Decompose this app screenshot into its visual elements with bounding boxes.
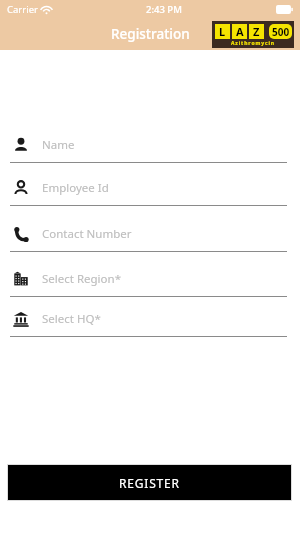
button[interactable]: Select HQ* bbox=[0, 306, 300, 337]
staticText: Z bbox=[253, 24, 260, 39]
staticText: Contact Number bbox=[42, 226, 132, 242]
staticText: Carrier bbox=[7, 3, 38, 16]
button[interactable]: Select Region* bbox=[0, 266, 300, 297]
staticText: Employee Id bbox=[42, 180, 109, 196]
staticText: A bbox=[236, 24, 244, 39]
button[interactable]: Employee Id bbox=[0, 175, 300, 206]
staticText: L bbox=[219, 24, 226, 39]
other: LAZ 500 Azithromycin logo bbox=[212, 21, 294, 48]
button[interactable]: Contact Number bbox=[0, 221, 300, 252]
staticText: Select HQ* bbox=[42, 311, 101, 327]
staticText: Select Region* bbox=[42, 271, 121, 287]
button[interactable]: Name bbox=[0, 132, 300, 163]
button[interactable]: REGISTER bbox=[7, 464, 292, 501]
staticText: Registration bbox=[111, 25, 190, 43]
staticText: Azithromycin bbox=[231, 40, 275, 47]
staticText: REGISTER bbox=[119, 475, 180, 491]
staticText: Name bbox=[42, 137, 75, 153]
staticText: 500 bbox=[272, 25, 290, 39]
staticText: 2:43 PM bbox=[146, 3, 182, 16]
